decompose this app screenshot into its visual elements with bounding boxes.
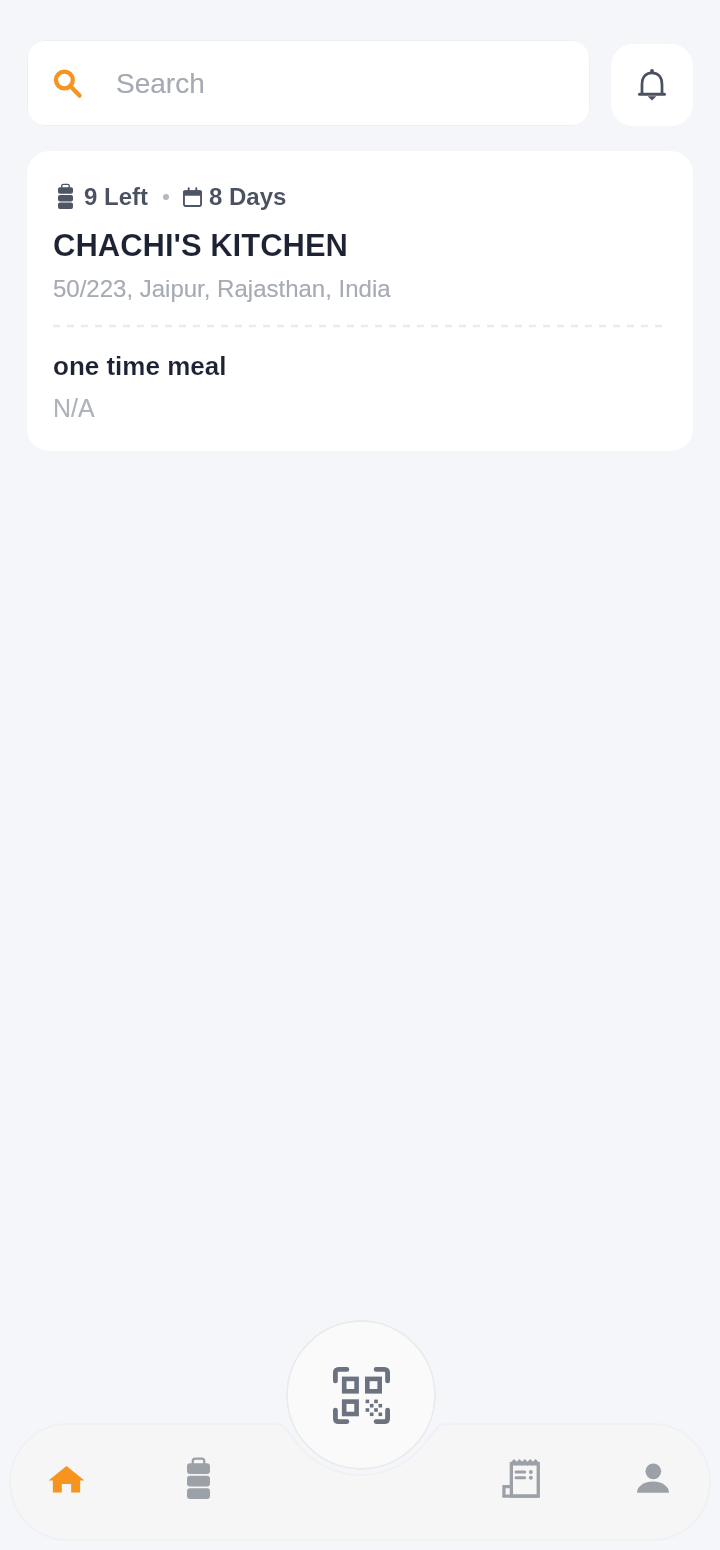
button[interactable]: Search bbox=[27, 40, 590, 126]
staticText: one time meal bbox=[53, 351, 227, 380]
button[interactable]: 9 Left bbox=[27, 151, 693, 451]
staticText: N/A bbox=[53, 394, 95, 422]
button[interactable]: Scan QR code bbox=[286, 1320, 436, 1470]
staticText: 8 Days bbox=[209, 183, 287, 210]
staticText: 50/223, Jaipur, Rajasthan, India bbox=[53, 275, 391, 302]
button[interactable]: Home bbox=[7, 1424, 127, 1540]
button[interactable]: My plan bbox=[138, 1424, 258, 1540]
button[interactable]: Orders bbox=[461, 1424, 581, 1540]
button[interactable]: Notifications bbox=[611, 44, 693, 126]
staticText: 9 Left bbox=[84, 183, 149, 210]
button[interactable]: Profile bbox=[593, 1424, 713, 1540]
staticText: CHACHI'S KITCHEN bbox=[53, 228, 348, 263]
staticText: Search bbox=[116, 68, 205, 99]
